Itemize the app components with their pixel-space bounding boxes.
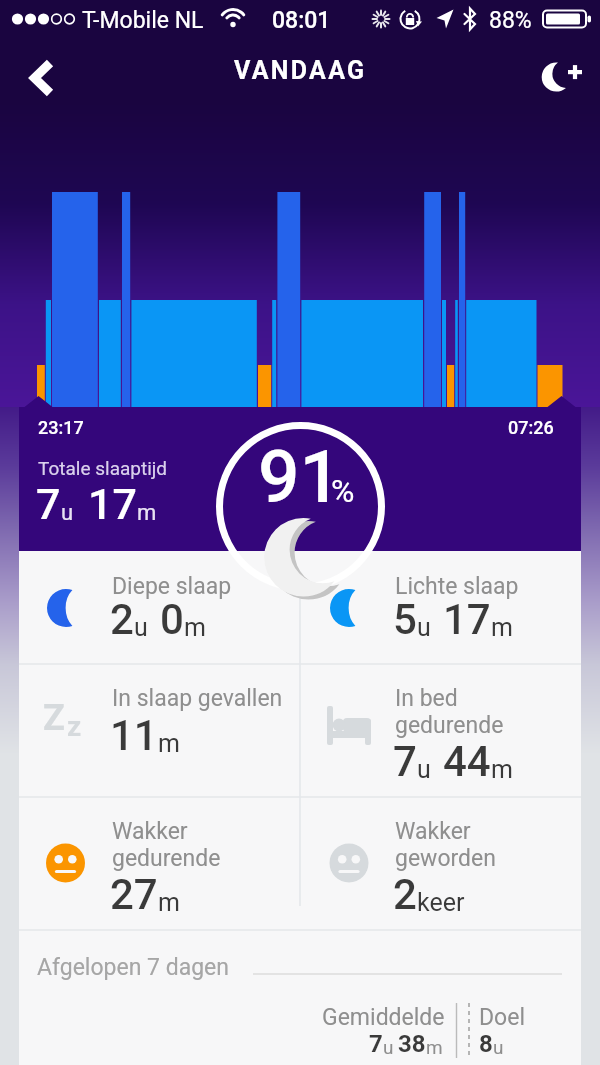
staticText: geworden: [395, 845, 496, 872]
staticText: m: [137, 500, 157, 526]
staticText: u: [134, 613, 148, 642]
staticText: Z: [43, 697, 65, 739]
staticText: u: [417, 755, 431, 784]
staticText: u: [383, 1036, 394, 1058]
staticText: 2: [393, 870, 417, 919]
staticText: 0: [160, 595, 184, 644]
staticText: 5: [393, 595, 417, 644]
staticText: 7: [393, 737, 417, 786]
staticText: Afgelopen 7 dagen: [37, 954, 229, 981]
button[interactable]: Add sleep: [538, 49, 594, 105]
staticText: 17: [88, 479, 137, 529]
staticText: 2: [110, 595, 134, 644]
staticText: m: [491, 755, 513, 784]
staticText: Wakker: [395, 818, 471, 845]
staticText: In bed: [395, 685, 458, 712]
staticText: 44: [443, 737, 491, 786]
staticText: 7: [369, 1030, 383, 1058]
staticText: T-Mobile NL: [82, 7, 204, 34]
staticText: 08:01: [272, 7, 331, 34]
staticText: z: [67, 710, 82, 743]
staticText: m: [426, 1036, 443, 1058]
staticText: m: [158, 888, 180, 917]
staticText: Lichte slaap: [395, 573, 519, 600]
staticText: 07:26: [508, 417, 554, 438]
staticText: 23:17: [38, 417, 84, 438]
staticText: 27: [110, 870, 158, 919]
staticText: gedurende: [112, 845, 221, 872]
staticText: %: [331, 472, 355, 510]
staticText: Diepe slaap: [112, 573, 232, 600]
staticText: VANDAAG: [234, 56, 367, 85]
staticText: 91: [258, 434, 341, 520]
staticText: 88%: [489, 7, 532, 34]
staticText: Doel: [479, 1004, 525, 1031]
staticText: 8: [479, 1030, 493, 1058]
staticText: 7: [36, 479, 61, 529]
staticText: Gemiddelde: [322, 1004, 445, 1031]
staticText: Wakker: [112, 818, 188, 845]
staticText: u: [61, 500, 74, 526]
staticText: u: [493, 1036, 504, 1058]
staticText: 11: [110, 711, 158, 760]
staticText: 17: [443, 595, 491, 644]
staticText: keer: [417, 888, 465, 917]
staticText: m: [491, 613, 513, 642]
staticText: gedurende: [395, 712, 504, 739]
staticText: In slaap gevallen: [112, 685, 283, 712]
staticText: Totale slaaptijd: [38, 457, 168, 479]
staticText: 38: [398, 1030, 426, 1058]
staticText: m: [158, 729, 180, 758]
button[interactable]: Back: [14, 46, 66, 98]
staticText: u: [417, 613, 431, 642]
staticText: m: [184, 613, 206, 642]
